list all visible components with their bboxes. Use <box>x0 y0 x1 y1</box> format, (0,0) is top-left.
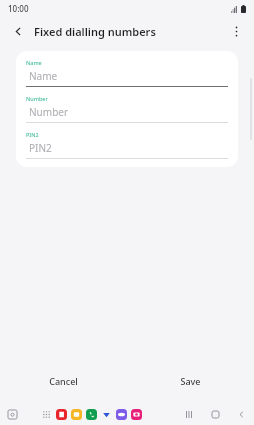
staticText: PIN2 <box>26 131 39 138</box>
button[interactable]: Capture screen <box>5 407 19 421</box>
staticText: 10:00 <box>8 3 29 14</box>
button[interactable]: Number <box>26 95 228 123</box>
button[interactable]: Back <box>8 21 28 41</box>
button[interactable]: Save <box>127 371 254 391</box>
staticText: Name <box>26 59 42 66</box>
button[interactable]: Internet <box>116 409 127 420</box>
button[interactable]: Back <box>234 407 248 421</box>
button[interactable]: Files <box>71 409 82 420</box>
staticText: Fixed dialling numbers <box>34 24 156 39</box>
button[interactable]: Name <box>26 59 228 87</box>
staticText: Name <box>29 69 58 83</box>
staticText: PIN2 <box>29 141 52 155</box>
button[interactable]: Home <box>208 407 222 421</box>
staticText: Number <box>29 105 69 119</box>
button[interactable]: Camera <box>131 409 142 420</box>
staticText: Cancel <box>49 375 78 387</box>
staticText: Save <box>180 375 201 387</box>
button[interactable]: Recent apps <box>182 407 196 421</box>
button[interactable]: Gallery <box>56 409 67 420</box>
button[interactable]: Cancel <box>0 371 127 391</box>
button[interactable]: PIN2 <box>26 131 228 159</box>
staticText: Number <box>26 95 48 102</box>
button[interactable]: Phone <box>86 409 97 420</box>
button[interactable]: Messages <box>101 409 112 420</box>
button[interactable]: Apps <box>41 409 52 420</box>
button[interactable]: More options <box>226 21 246 41</box>
